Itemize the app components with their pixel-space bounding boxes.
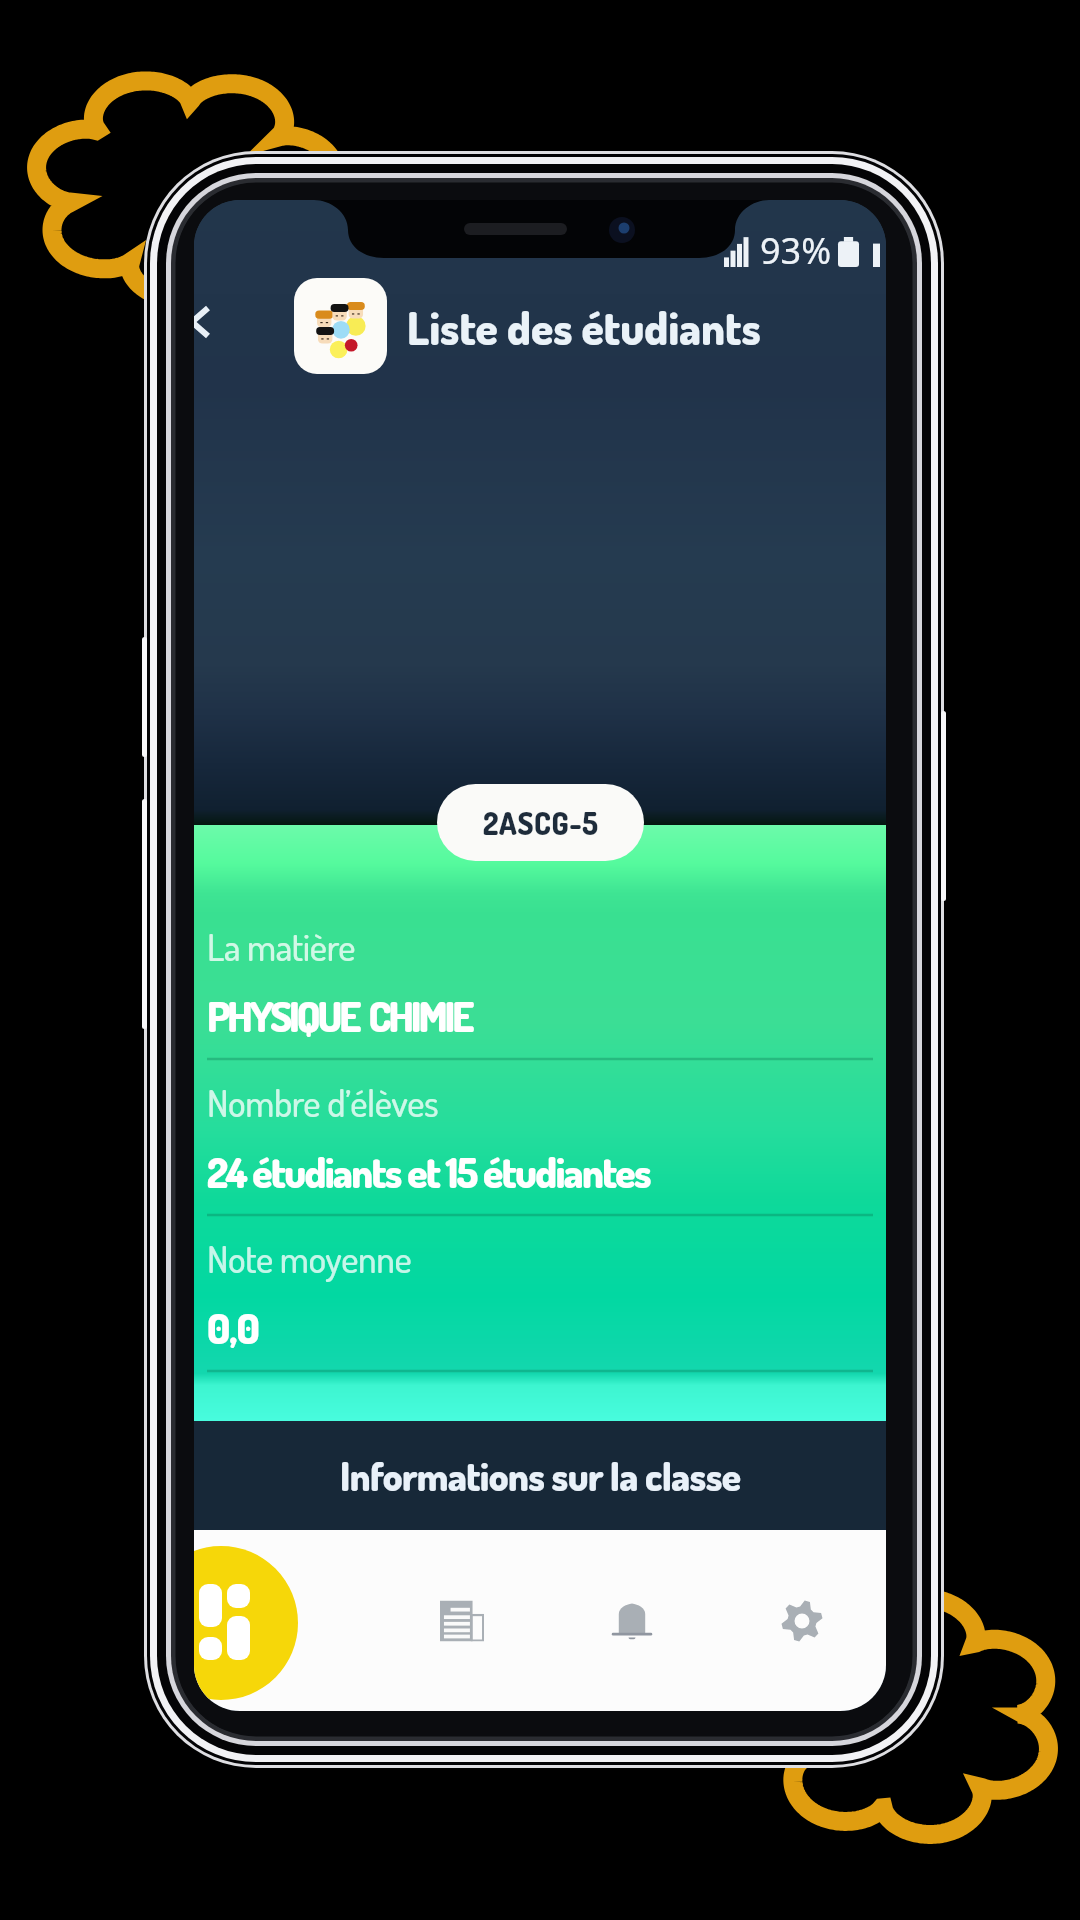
button[interactable]: Settings [773, 1592, 831, 1650]
staticText: 24 étudiants et 15 étudiantes [207, 1146, 650, 1198]
staticText: Note moyenne [207, 1235, 412, 1282]
staticText: PHYSIQUE CHIMIE [207, 990, 472, 1042]
button[interactable]: Documents [433, 1592, 491, 1650]
staticText: La matière [207, 923, 356, 970]
staticText: 0,0 [207, 1302, 259, 1354]
button[interactable]: Back [194, 305, 211, 339]
button[interactable]: Notifications [603, 1592, 661, 1650]
staticText: 93% [760, 226, 832, 275]
staticText: Informations sur la classe [340, 1451, 741, 1500]
button[interactable]: Class icon [294, 278, 387, 374]
staticText: Nombre d’élèves [207, 1079, 439, 1126]
button[interactable]: Informations sur la classe [194, 1421, 886, 1530]
button[interactable]: Dashboard [194, 1546, 298, 1700]
button[interactable]: 2ASCG-5 [437, 784, 644, 861]
staticText: 2ASCG-5 [483, 804, 599, 842]
staticText: Liste des étudiants [407, 299, 761, 356]
